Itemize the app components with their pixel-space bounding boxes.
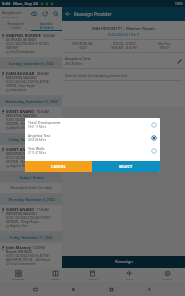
- staticText: Friday, November 11, 2022: [9, 235, 53, 240]
- staticText: 100%: [175, 2, 183, 6]
- staticText: Angelica Test: [28, 133, 51, 138]
- staticText: MICROW.. - Range Repair: [6, 220, 40, 224]
- staticText: Test2 Development: [28, 120, 61, 125]
- button[interactable]: John Mcanoy: [0, 243, 62, 268]
- staticText: MICROW.. - Range Repair: [6, 122, 40, 126]
- button[interactable]: SWAPNIL BURNDE: [0, 31, 62, 57]
- staticText: BROCKTON, MA 02302: [6, 76, 37, 80]
- staticText: WASHERONTY1 - Washer Repair: [62, 26, 185, 32]
- staticText: SUMIT ANAND: [6, 207, 35, 212]
- staticText: 10/27/22 - 8/18/22: [112, 42, 136, 46]
- staticText: Angelica Test: [10, 126, 28, 130]
- staticText: SUMIT ANAND: [6, 109, 35, 114]
- button[interactable]: SUMIT ANAND: [0, 205, 62, 231]
- button[interactable]: Edit provider: [176, 58, 183, 65]
- staticText: Wednesday, September 21, 2022: [5, 99, 58, 104]
- staticText: OUTHOUSE, NE 00001: [6, 38, 37, 42]
- staticText: Test Walls: [28, 146, 45, 151]
- staticText: SELECT: [119, 164, 133, 169]
- staticText: Unassigned: [10, 88, 26, 92]
- button[interactable]: Search: [52, 10, 60, 18]
- button[interactable]: Upload: [30, 10, 38, 18]
- staticText: $94.67: [160, 46, 169, 50]
- staticText: Angelica's: [2, 10, 22, 16]
- staticText: Angelica Test: [65, 56, 91, 62]
- button[interactable]: DASHBOARD: [0, 268, 37, 282]
- staticText: 02302: [79, 46, 87, 50]
- staticText: SO ID: 322-0042-1943 (H: ACTIVE): [6, 254, 50, 258]
- button[interactable]: Test Walls: [25, 144, 160, 157]
- staticText: Thursday, November 3, 2022: [8, 197, 55, 202]
- button[interactable]: SETTINGS: [148, 268, 185, 282]
- staticText: Today's Orders: [19, 175, 44, 180]
- staticText: 08:00 AM: [43, 34, 55, 38]
- staticText: Newark, NW 58201: [6, 250, 33, 254]
- staticText: 12:00 PM: [33, 246, 45, 250]
- button[interactable]: CANCEL: [25, 161, 92, 172]
- staticText: No assigned orders for today: [10, 186, 52, 190]
- staticText: 11:45 AM: [37, 148, 49, 152]
- staticText: Available: [40, 22, 53, 26]
- staticText: Enter the details for reassigning provid…: [65, 74, 128, 78]
- button[interactable]: Sync: [41, 10, 49, 18]
- staticText: WASHERON_PRO_W.. - Wsh Repair: [6, 258, 51, 262]
- staticText: DASHBOARD: [12, 278, 25, 281]
- staticText: SETTINGS: [162, 278, 172, 281]
- staticText: Reassigned: [7, 22, 24, 26]
- button[interactable]: ROUTE: [111, 268, 148, 282]
- button[interactable]: Reassign: [62, 256, 185, 268]
- staticText: 1831.11 Miles: [28, 125, 46, 129]
- staticText: SO ID: 322-0042-1296 (ACCEPTED): [6, 216, 51, 220]
- staticText: BROCKTON, MA 02302: [6, 114, 37, 118]
- button[interactable]: Enter the details for reassigning provid…: [62, 69, 185, 107]
- staticText: 08:00 AM - 12:00 PM: [111, 46, 137, 50]
- button[interactable]: Available: [31, 21, 62, 31]
- staticText: Angelica Test: [10, 164, 28, 168]
- staticText: WASHER?: [6, 46, 19, 50]
- staticText: DRYERE - Dryer Repair: [6, 84, 36, 88]
- staticText: BROCKTON, MA 02302: [6, 212, 37, 216]
- staticText: 3117.47 Miles: [28, 151, 46, 155]
- staticText: Mon, Sep 24: [13, 1, 38, 7]
- staticText: SO ID: 322-0042-1296 (ACCEPTED): [6, 156, 51, 160]
- staticText: JUAN AGUILAR: [6, 71, 35, 76]
- staticText: Test2 Development: [10, 262, 36, 265]
- staticText: BROCKTON, MA 02302: [6, 152, 37, 156]
- button[interactable]: JUAN AGUILAR: [0, 69, 62, 95]
- staticText: BROCKTON, MA: [72, 42, 93, 46]
- button[interactable]: Angelica Test: [25, 131, 160, 144]
- button[interactable]: Angelica Test: [62, 53, 185, 68]
- staticText: John Mcanoy: [6, 245, 31, 250]
- button[interactable]: SCHEDULE: [74, 268, 111, 282]
- staticText: 10:30 AM: [37, 110, 49, 114]
- staticText: SUMIT ANAND: [6, 147, 35, 152]
- staticText: Tuesday, September 6, 2022: [8, 61, 54, 66]
- button[interactable]: ORDERS: [37, 268, 74, 282]
- staticText: 2063.86 Miles: [28, 138, 46, 142]
- staticText: SCHEDULE: [87, 278, 98, 281]
- staticText: Reassign Provider: [74, 11, 112, 17]
- button[interactable]: Reassigned: [0, 21, 31, 31]
- staticText: Test2 Development: [10, 50, 36, 54]
- staticText: Friday, September 30, 2022: [9, 137, 53, 142]
- staticText: Reassign: [115, 259, 133, 265]
- staticText: 8:44: [2, 1, 11, 7]
- staticText: 1 Order: [10, 26, 21, 30]
- staticText: SO ID: 322-0042-1923 (H: ACTIVE): [6, 80, 50, 84]
- button[interactable]: SUMIT ANAND: [0, 145, 62, 171]
- button[interactable]: Test2 Development: [25, 118, 160, 131]
- staticText: 08:00 AM: [37, 72, 49, 76]
- staticText: ROUTE: [126, 278, 133, 281]
- staticText: SO ID 024-0139-1726-11: [62, 33, 185, 37]
- staticText: SO ID: 322-0042-1296 (ACCEPTED): [6, 118, 51, 122]
- staticText: 2063.86 Miles: [65, 62, 83, 66]
- staticText: MICROW.. - Range Repair: [6, 160, 40, 164]
- staticText: SO ID: 344-0700-8606 (T: ACTIVE): [6, 42, 49, 46]
- button[interactable]: SUMIT ANAND: [0, 107, 62, 133]
- staticText: Angelica Test: [10, 224, 28, 228]
- button[interactable]: SELECT: [92, 161, 160, 172]
- button[interactable]: Back: [64, 10, 72, 18]
- staticText: Last sync 8:43 AM: [2, 16, 19, 19]
- staticText: SWAPNIL BURNDE: [6, 33, 41, 38]
- staticText: 20 Orders: [39, 26, 54, 30]
